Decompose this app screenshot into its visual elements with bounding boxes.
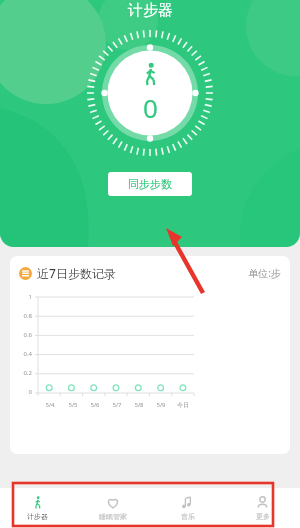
staticText: 同步步数 xyxy=(128,177,172,191)
staticText: 5/7 xyxy=(112,401,122,409)
staticText: 5/4 xyxy=(45,401,55,409)
button[interactable]: 更多 xyxy=(225,488,300,528)
staticText: 0.8 xyxy=(23,312,32,320)
staticText: 更多 xyxy=(256,512,270,521)
staticText: 5/5 xyxy=(68,401,78,409)
staticText: 0.4 xyxy=(23,350,32,358)
staticText: 5/8 xyxy=(134,401,144,409)
staticText: 近7日步数记录 xyxy=(37,265,116,281)
staticText: 0 xyxy=(143,90,158,125)
staticText: 0 xyxy=(28,388,32,396)
button[interactable]: 计步器 xyxy=(0,488,75,528)
staticText: 计步器 xyxy=(27,512,48,521)
staticText: 0.2 xyxy=(23,369,32,377)
button[interactable]: 音乐 xyxy=(150,488,225,528)
staticText: 音乐 xyxy=(181,512,195,521)
staticText: 5/9 xyxy=(156,401,166,409)
staticText: 5/6 xyxy=(90,401,100,409)
staticText: 计步器 xyxy=(128,1,173,20)
button[interactable]: 睡眠管家 xyxy=(75,488,150,528)
staticText: 今日 xyxy=(177,401,189,409)
staticText: 睡眠管家 xyxy=(99,512,127,521)
staticText: 0.6 xyxy=(23,331,32,339)
staticText: 1 xyxy=(28,293,32,301)
staticText: 单位:步 xyxy=(248,266,281,280)
button[interactable]: 同步步数 xyxy=(108,172,192,196)
